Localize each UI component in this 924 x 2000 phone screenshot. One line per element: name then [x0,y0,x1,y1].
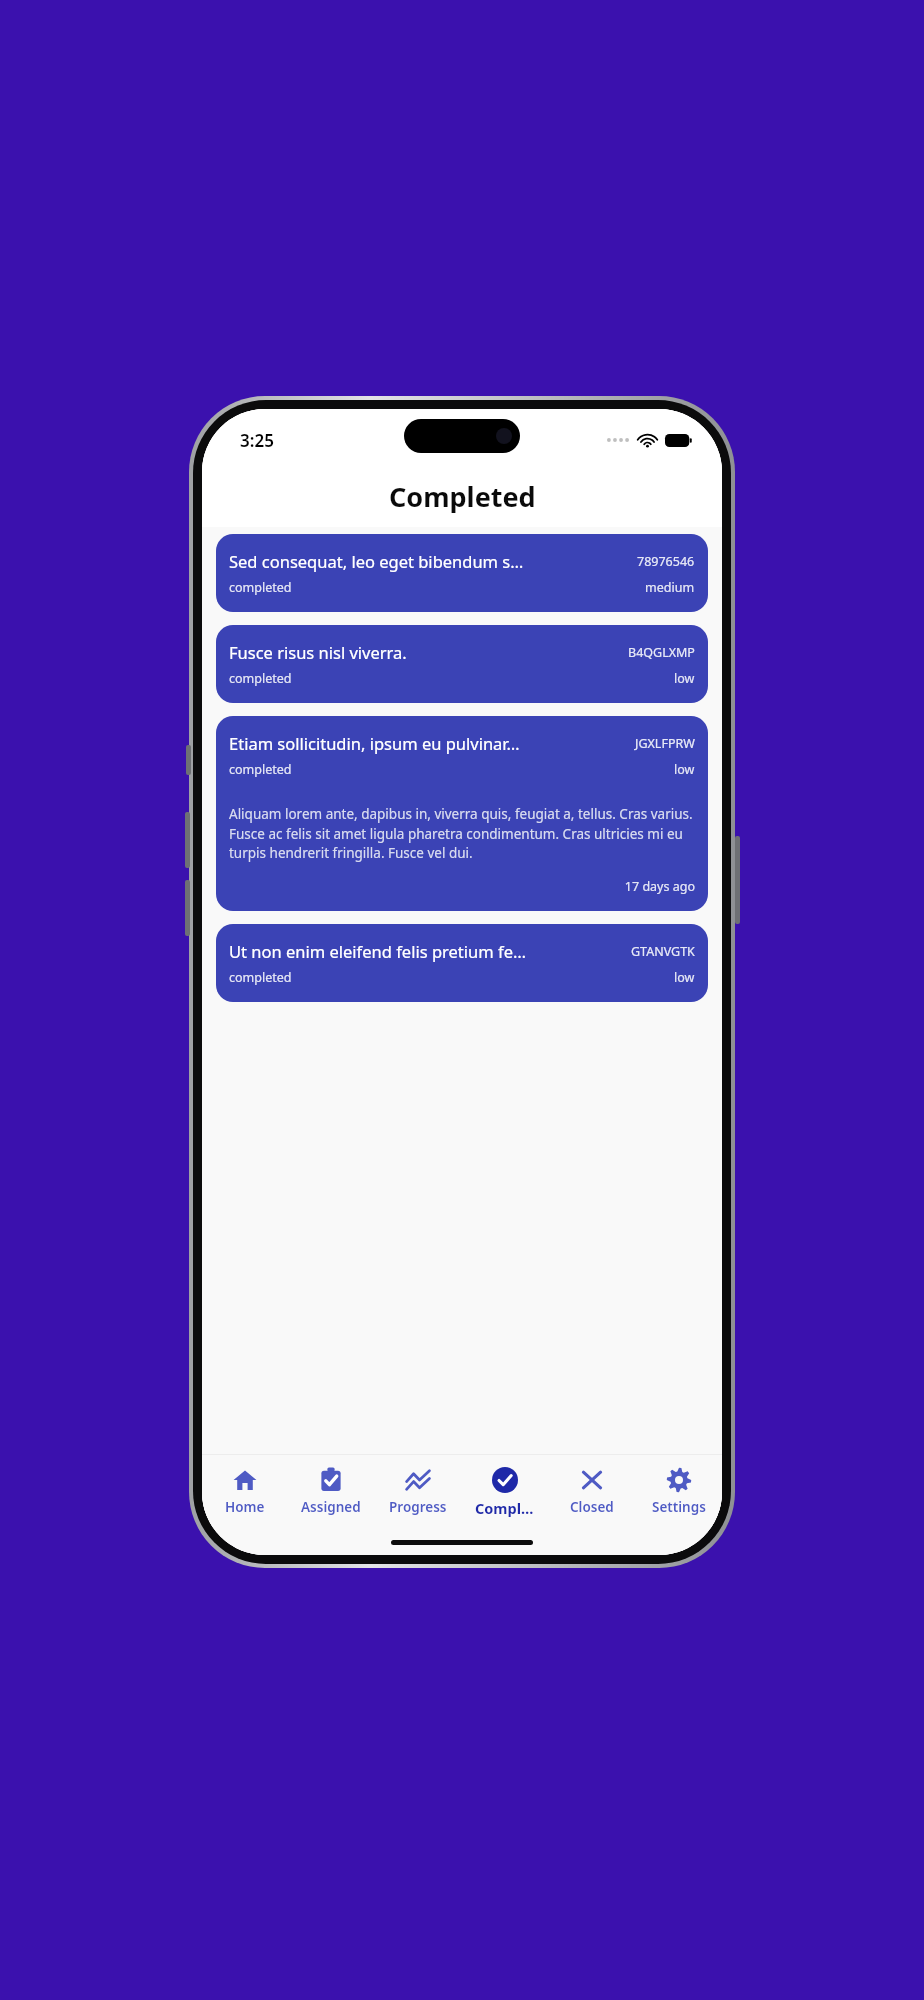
button[interactable]: Sed consequat, leo eget bibendum s… [216,534,708,612]
button[interactable]: Settings [635,1455,722,1529]
staticText: low [674,969,695,986]
staticText: Settings [652,1498,706,1516]
staticText: JGXLFPRW [635,735,695,752]
button[interactable]: Fusce risus nisl viverra. [216,625,708,703]
staticText: low [674,670,695,687]
staticText: Compl… [475,1498,534,1518]
button[interactable]: Etiam sollicitudin, ipsum eu pulvinar… [216,716,708,911]
staticText: Etiam sollicitudin, ipsum eu pulvinar… [229,732,627,754]
staticText: low [674,761,695,778]
button[interactable]: Home [202,1455,288,1529]
staticText: completed [229,670,674,687]
staticText: Assigned [301,1498,361,1516]
staticText: Ut non enim eleifend felis pretium fe… [229,940,623,962]
staticText: Fusce risus nisl viverra. [229,641,620,663]
button[interactable]: Closed [548,1455,635,1529]
staticText: completed [229,761,674,778]
button[interactable]: Ut non enim eleifend felis pretium fe… [216,924,708,1002]
staticText: completed [229,579,645,596]
staticText: Closed [570,1498,614,1516]
staticText: 78976546 [637,553,695,570]
staticText: Completed [389,478,536,515]
button[interactable]: Assigned [288,1455,374,1529]
staticText: Progress [389,1498,447,1516]
staticText: GTANVGTK [631,943,695,960]
staticText: 3:25 [240,429,274,452]
staticText: completed [229,969,674,986]
button[interactable]: Progress [374,1455,461,1529]
staticText: B4QGLXMP [628,644,695,661]
staticText: Aliquam lorem ante, dapibus in, viverra … [229,805,695,862]
staticText: Sed consequat, leo eget bibendum s… [229,550,629,572]
staticText: medium [645,579,695,596]
staticText: 17 days ago [229,878,695,895]
staticText: Home [225,1498,265,1516]
button[interactable]: Compl… [461,1455,548,1529]
